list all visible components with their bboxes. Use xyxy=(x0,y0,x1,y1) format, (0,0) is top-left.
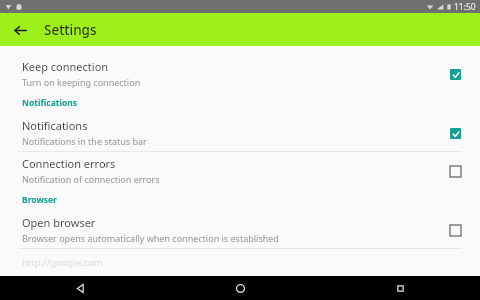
staticText: Notifications xyxy=(22,118,88,133)
button[interactable]: Checked xyxy=(444,122,466,144)
staticText: 11:50 xyxy=(454,1,476,13)
staticText: Notifications in the status bar xyxy=(22,135,147,147)
button[interactable]: Checked xyxy=(444,63,466,85)
staticText: Browser xyxy=(22,194,57,206)
staticText: Notification of connection errors xyxy=(22,173,160,185)
button[interactable]: Unchecked xyxy=(444,160,466,182)
staticText: Keep connection xyxy=(22,59,109,74)
button[interactable]: Back xyxy=(0,276,160,300)
button[interactable]: Home xyxy=(160,276,320,300)
button[interactable]: Connection errors xyxy=(0,152,480,189)
staticText: http://google.com xyxy=(22,256,103,269)
button[interactable]: Keep connection xyxy=(0,55,480,92)
staticText: Notifications xyxy=(22,97,78,109)
button[interactable]: Recent apps xyxy=(320,276,480,300)
staticText: Settings xyxy=(44,21,97,39)
staticText: Turn on keeping connection xyxy=(22,76,141,88)
button[interactable]: Open browser xyxy=(0,211,480,248)
button[interactable]: Unchecked xyxy=(444,219,466,241)
staticText: Browser opens automatically when connect… xyxy=(22,232,279,244)
staticText: Open browser xyxy=(22,215,96,230)
button[interactable]: Back xyxy=(8,18,32,42)
staticText: Connection errors xyxy=(22,156,116,171)
button[interactable]: Notifications xyxy=(0,114,480,151)
